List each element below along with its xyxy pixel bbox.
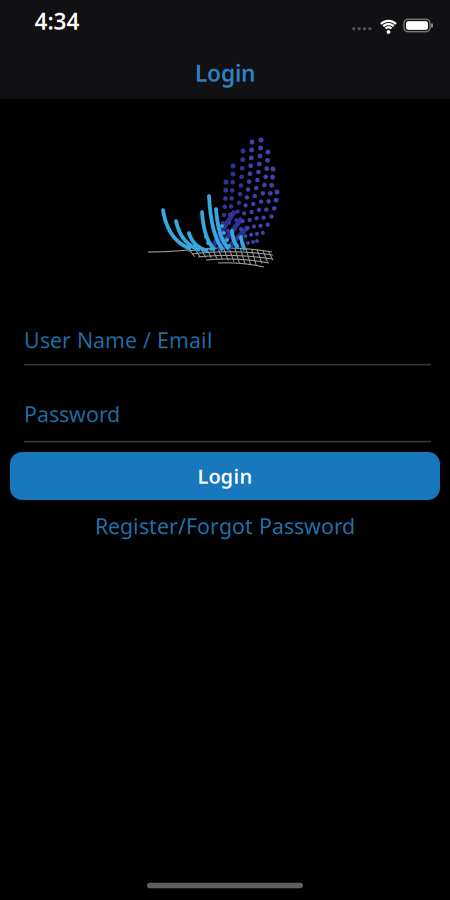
staticText: Password [24, 400, 120, 428]
staticText: Login [197, 463, 252, 489]
staticText: Register/Forgot Password [95, 512, 355, 540]
button[interactable]: Password [24, 402, 431, 442]
button[interactable]: Register/Forgot Password [95, 512, 355, 540]
button[interactable]: User Name / Email [24, 328, 431, 365]
staticText: 4:34 [34, 6, 79, 36]
button[interactable]: Login [10, 452, 440, 500]
staticText: User Name / Email [24, 326, 213, 354]
staticText: Login [195, 58, 255, 88]
